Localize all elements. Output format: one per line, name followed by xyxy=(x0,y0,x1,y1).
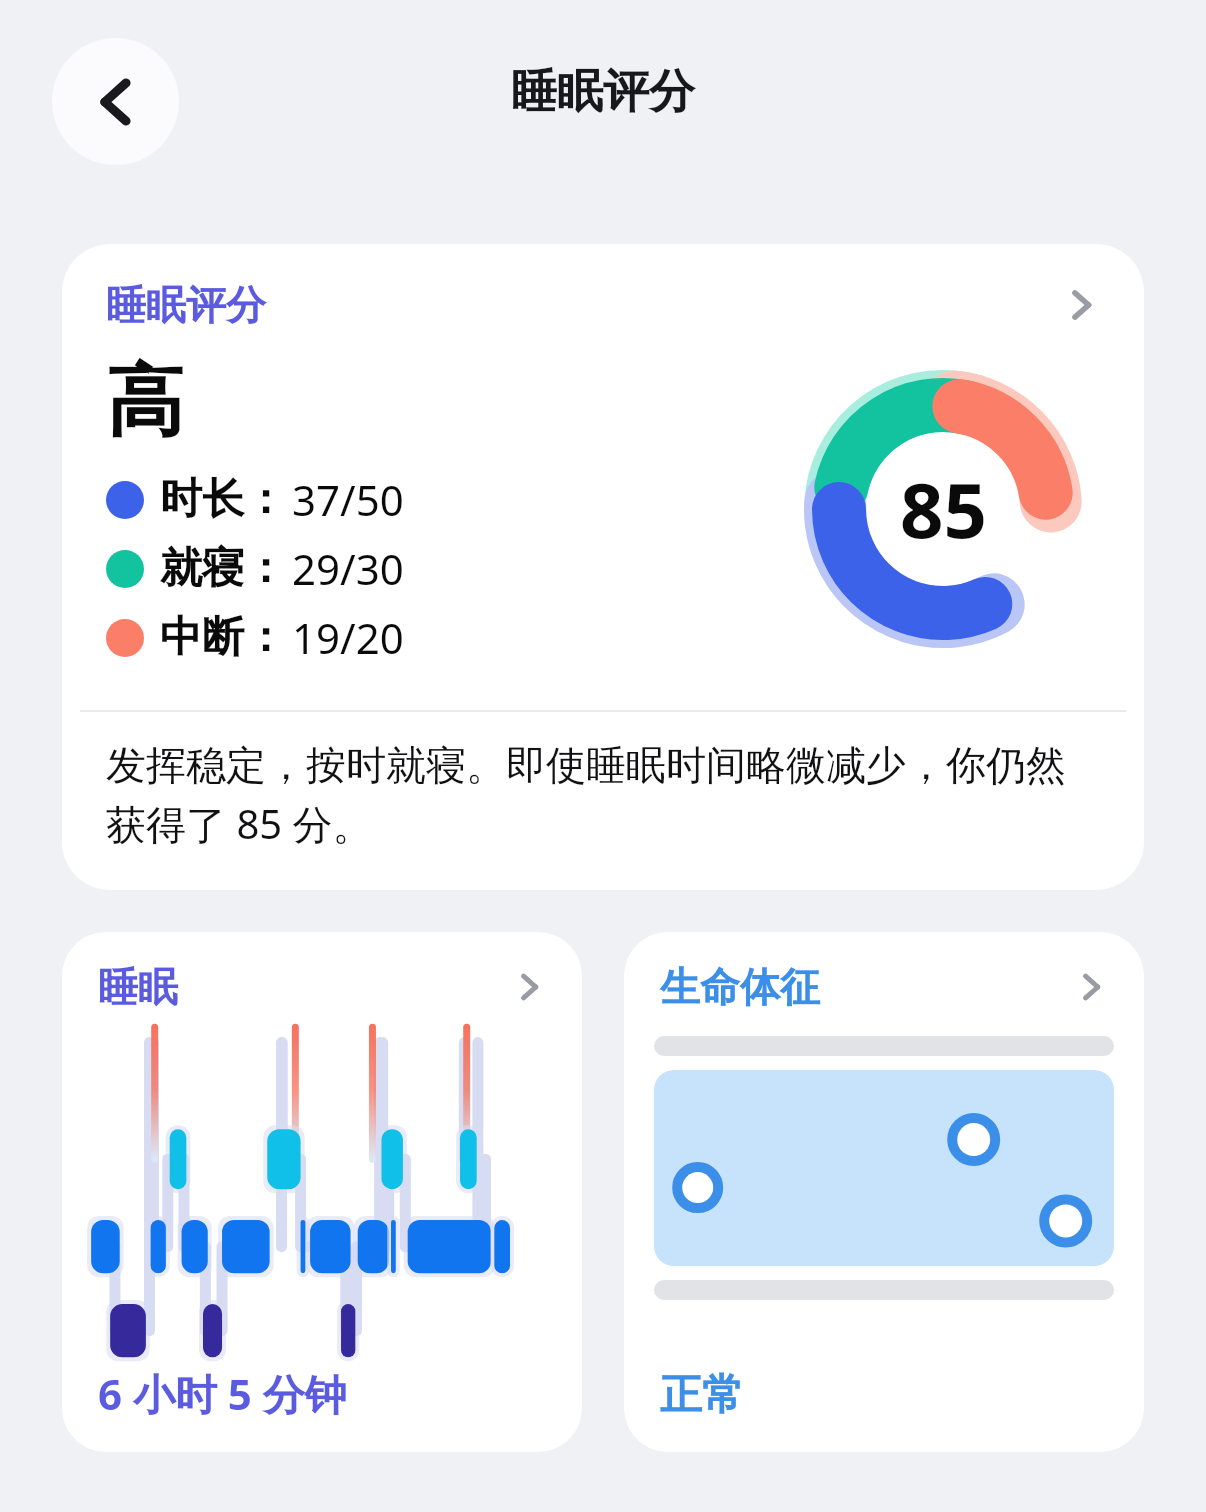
staticText: 29/30 xyxy=(292,540,404,597)
staticText: 睡眠评分 xyxy=(511,63,695,121)
button[interactable]: 睡眠评分 xyxy=(62,244,1144,890)
staticText: 就寝： xyxy=(160,542,286,595)
staticText: 正常 xyxy=(660,1369,744,1422)
staticText: 睡眠 xyxy=(98,962,178,1012)
staticText: 高 xyxy=(106,353,184,451)
staticText: 19/20 xyxy=(292,609,404,666)
staticText: 中断： xyxy=(160,611,286,664)
staticText: 发挥稳定，按时就寝。即使睡眠时间略微减少，你仍然获得了 85 分。 xyxy=(106,740,1100,850)
staticText: 生命体征 xyxy=(660,962,820,1012)
staticText: 37/50 xyxy=(292,471,404,528)
button[interactable]: 睡眠 xyxy=(62,932,582,1452)
staticText: 时长： xyxy=(160,473,286,526)
staticText: 85 xyxy=(900,457,987,561)
staticText: 睡眠评分 xyxy=(106,280,266,330)
staticText: 6 小时 5 分钟 xyxy=(98,1365,347,1422)
button[interactable]: Back xyxy=(52,38,179,165)
button[interactable]: 生命体征 xyxy=(624,932,1144,1452)
